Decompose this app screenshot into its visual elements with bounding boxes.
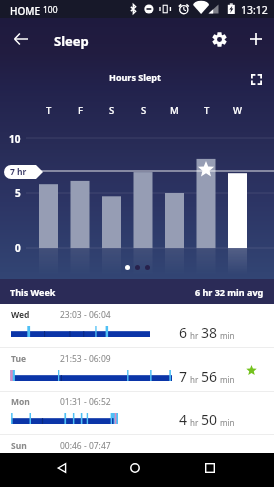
staticText: Hours Slept [109, 71, 161, 83]
staticText: 7 [179, 367, 188, 386]
staticText: F [78, 104, 84, 117]
staticText: Sleep [54, 32, 89, 50]
staticText: 0 [15, 241, 21, 255]
staticText: Sun [11, 440, 27, 452]
button[interactable]: Wed [0, 304, 274, 348]
staticText: 6 [179, 323, 188, 342]
staticText: S [141, 104, 147, 117]
staticText: 10 [9, 132, 21, 146]
button[interactable]: Full screen [244, 67, 268, 91]
staticText: T [46, 104, 52, 117]
staticText: W [233, 104, 242, 117]
button[interactable]: Tue [0, 348, 274, 392]
staticText: 21:53 - 06:09 [60, 353, 111, 365]
staticText: HOME [10, 4, 41, 18]
staticText: S [109, 104, 115, 117]
staticText: Mon [11, 396, 30, 408]
button[interactable]: Back [9, 27, 33, 51]
staticText: 13:12 [241, 3, 268, 17]
staticText: min [218, 374, 235, 385]
button[interactable]: 7 hour goal [4, 165, 43, 179]
staticText: This Week [10, 286, 56, 298]
staticText: Tue [11, 353, 27, 365]
staticText: M [170, 104, 179, 117]
button[interactable]: Mon [0, 391, 274, 435]
staticText: min [218, 330, 235, 341]
staticText: 00:46 - 07:47 [60, 440, 111, 452]
staticText: hr [188, 330, 201, 341]
staticText: 4 [179, 410, 188, 429]
staticText: 50 [201, 410, 218, 429]
button[interactable]: Recent apps [198, 456, 222, 480]
staticText: Wed [11, 309, 30, 321]
button[interactable]: Settings [207, 27, 231, 51]
staticText: T [204, 104, 210, 117]
staticText: 38 [201, 323, 218, 342]
staticText: min [218, 417, 235, 428]
button[interactable]: Back [50, 456, 74, 480]
button[interactable]: Home [123, 456, 147, 480]
staticText: 6 hr 32 min avg [195, 286, 264, 298]
staticText: 56 [201, 367, 218, 386]
staticText: 7 hr [10, 166, 27, 178]
button[interactable]: Sun [0, 435, 274, 454]
staticText: hr [188, 374, 201, 385]
staticText: 23:03 - 06:04 [60, 309, 111, 321]
staticText: hr [188, 417, 201, 428]
staticText: 100 [43, 4, 58, 16]
button[interactable]: Add [244, 27, 268, 51]
staticText: 5 [15, 186, 21, 200]
staticText: 01:31 - 06:52 [60, 396, 111, 408]
